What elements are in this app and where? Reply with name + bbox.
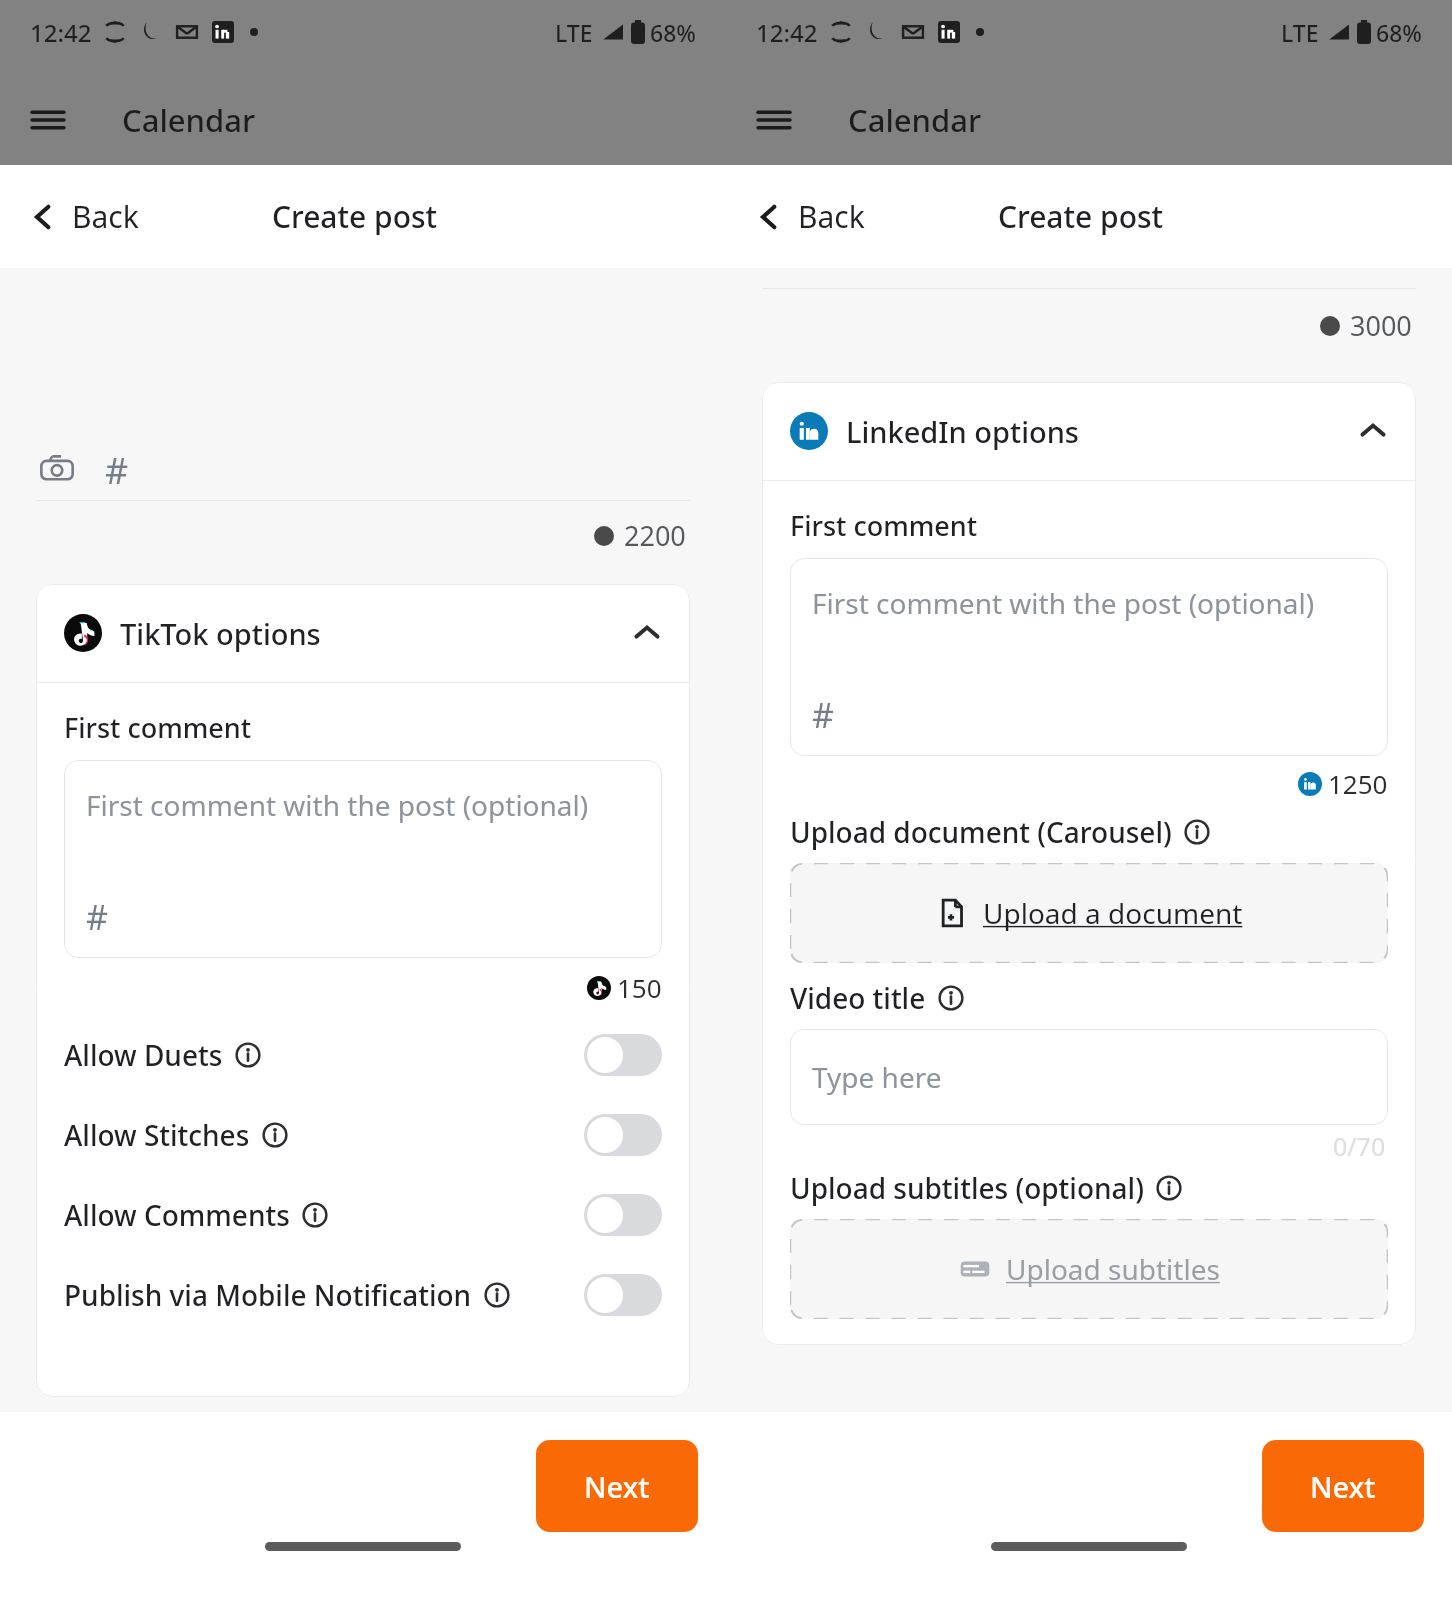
staticText: Allow Duets [64,1036,223,1074]
staticText: Create post [272,196,438,237]
staticText: TikTok options [120,614,321,653]
button[interactable]: Back [20,190,147,243]
button[interactable]: First comment with the post (optional) [790,558,1388,756]
staticText: First comment with the post (optional) [812,584,1315,622]
staticText: 68% [1376,17,1422,48]
staticText: Allow Comments [64,1196,290,1234]
staticText: Upload subtitles [1006,1250,1220,1288]
button[interactable]: Next [536,1440,698,1532]
staticText: 12:42 [30,16,92,49]
staticText: Publish via Mobile Notification [64,1276,472,1314]
staticText: 0/70 [1333,1129,1386,1163]
button[interactable]: Next [1262,1440,1424,1532]
staticText: Calendar [848,99,982,141]
staticText: Back [72,196,139,237]
staticText: 1250 [1328,766,1388,801]
button[interactable]: TikTok options [36,584,690,682]
button[interactable]: Open navigation menu [750,96,798,144]
staticText: Next [584,1467,650,1506]
staticText: 12:42 [756,16,818,49]
button[interactable]: Allow Duets [36,1015,690,1095]
staticText: First comment with the post (optional) [86,786,589,824]
staticText: Video title [790,979,926,1017]
staticText: Upload a document [983,894,1243,932]
staticText: 3000 [1350,307,1412,344]
button[interactable]: Upload a document [790,863,1388,963]
staticText: Upload subtitles (optional) [790,1169,1144,1207]
staticText: # [105,446,129,492]
button[interactable]: LinkedIn options [762,382,1416,480]
staticText: Create post [998,196,1164,237]
button[interactable]: Upload subtitles [790,1219,1388,1319]
staticText: First comment [64,709,252,746]
button[interactable]: Add hashtag [94,446,140,492]
staticText: Calendar [122,99,256,141]
staticText: Back [798,196,865,237]
button[interactable]: Allow Stitches [36,1095,690,1175]
staticText: LTE [1281,17,1319,48]
staticText: Type here [812,1058,942,1096]
staticText: LinkedIn options [846,412,1079,451]
button[interactable]: Back [746,190,873,243]
button[interactable]: Add media [34,446,80,492]
staticText: Next [1310,1467,1376,1506]
staticText: Upload document (Carousel) [790,813,1172,851]
staticText: First comment [790,507,978,544]
button[interactable]: Type here [790,1029,1388,1125]
staticText: Allow Stitches [64,1116,250,1154]
staticText: 150 [617,970,662,1005]
button[interactable]: Publish via Mobile Notification [36,1255,690,1335]
staticText: # [86,894,108,940]
button[interactable]: Open navigation menu [24,96,72,144]
staticText: 68% [650,17,696,48]
button[interactable]: First comment with the post (optional) [64,760,662,958]
staticText: LTE [555,17,593,48]
button[interactable]: Allow Comments [36,1175,690,1255]
staticText: # [812,692,834,738]
staticText: 2200 [624,517,686,554]
